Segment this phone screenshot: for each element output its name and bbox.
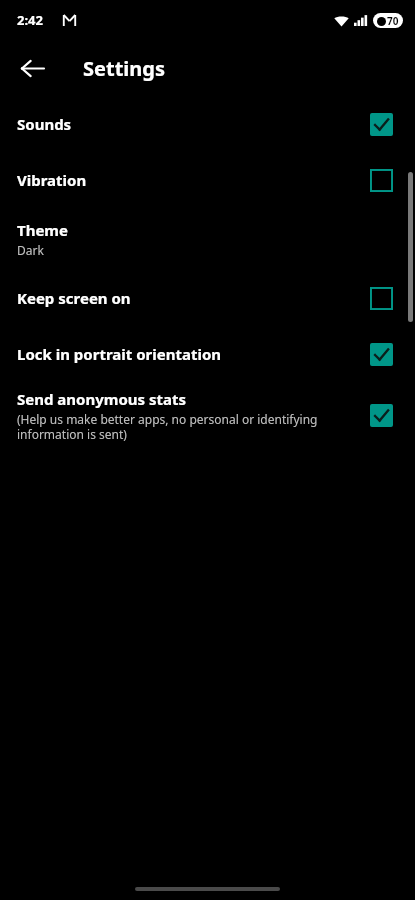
staticText: Theme — [17, 220, 68, 240]
button[interactable]: Sounds — [0, 96, 415, 152]
staticText: Keep screen on — [17, 288, 131, 308]
staticText: Vibration — [17, 170, 87, 190]
staticText: Settings — [83, 55, 165, 82]
button[interactable]: Theme — [0, 208, 415, 270]
button[interactable]: Back — [8, 44, 56, 92]
button[interactable]: Lock in portrait orientation — [0, 326, 415, 382]
button[interactable]: Send anonymous stats — [0, 382, 415, 448]
staticText: 2:42 — [17, 11, 43, 29]
staticText: Lock in portrait orientation — [17, 344, 222, 364]
button[interactable]: Vibration — [0, 152, 415, 208]
staticText: Send anonymous stats — [17, 389, 187, 409]
staticText: Dark — [17, 242, 44, 258]
staticText: Sounds — [17, 114, 72, 134]
button[interactable]: Keep screen on — [0, 270, 415, 326]
staticText: 70 — [387, 14, 399, 28]
staticText: (Help us make better apps, no personal o… — [17, 411, 318, 442]
